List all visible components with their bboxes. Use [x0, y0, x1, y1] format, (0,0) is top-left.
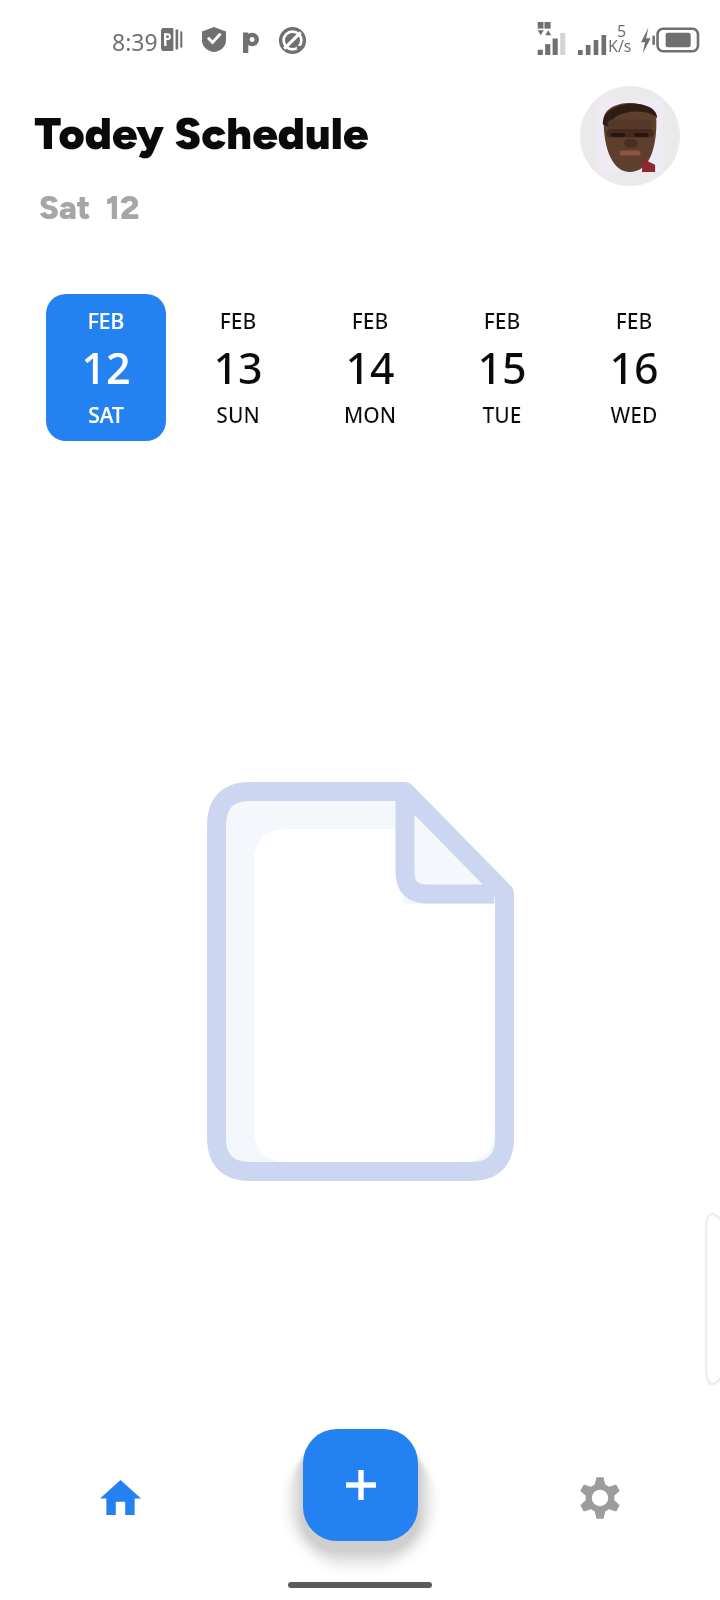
staticText: Todey Schedule [34, 106, 369, 160]
staticText: K/s [608, 35, 632, 57]
button[interactable]: Home [76, 1453, 164, 1541]
staticText: FEB [46, 307, 166, 336]
staticText: FEB [310, 307, 430, 336]
staticText: 13 [178, 338, 298, 397]
staticText: MON [310, 401, 430, 430]
staticText: SAT [46, 401, 166, 430]
button[interactable]: FEB [574, 294, 694, 441]
staticText: WED [574, 401, 694, 430]
button[interactable]: FEB [178, 294, 298, 441]
staticText: TUE [442, 401, 562, 430]
button[interactable]: FEB [310, 294, 430, 441]
button[interactable]: Profile photo [580, 86, 680, 186]
staticText: 14 [310, 338, 430, 397]
staticText: FEB [442, 307, 562, 336]
staticText: 12 [46, 338, 166, 397]
staticText: FEB [574, 307, 694, 336]
button[interactable]: Settings [556, 1454, 644, 1542]
staticText: Sat 12 [39, 188, 140, 228]
staticText: SUN [178, 401, 298, 430]
button[interactable]: Add event [303, 1429, 418, 1541]
button[interactable]: FEB [442, 294, 562, 441]
staticText: 8:39 [112, 26, 158, 57]
staticText: 16 [574, 338, 694, 397]
button[interactable]: FEB [46, 294, 166, 441]
staticText: FEB [178, 307, 298, 336]
staticText: 15 [442, 338, 562, 397]
staticText: 5 [617, 20, 627, 42]
